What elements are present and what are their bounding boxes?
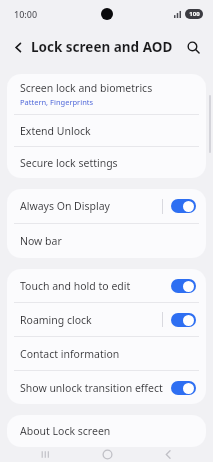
button[interactable]: Screen lock and biometrics <box>7 74 206 114</box>
staticText: Roaming clock <box>20 313 92 327</box>
staticText: Now bar <box>20 234 62 248</box>
button[interactable]: About Lock screen <box>7 415 206 447</box>
staticText: 10:00 <box>14 8 38 20</box>
button[interactable]: Extend Unlock <box>7 115 206 146</box>
button[interactable]: Show unlock transition effect toggle <box>171 381 196 395</box>
staticText: 100 <box>189 10 200 18</box>
button[interactable]: Search <box>181 35 205 59</box>
button[interactable]: Roaming clock toggle <box>171 313 196 327</box>
button[interactable]: Back <box>152 447 184 462</box>
staticText: Show unlock transition effect <box>20 381 163 395</box>
staticText: Extend Unlock <box>20 124 91 138</box>
button[interactable]: Secure lock settings <box>7 147 206 178</box>
staticText: Touch and hold to edit <box>20 279 131 293</box>
button[interactable]: Contact information <box>7 337 206 370</box>
staticText: Always On Display <box>20 199 110 213</box>
button[interactable]: Touch and hold to edit <box>7 269 206 302</box>
button[interactable]: Always On Display <box>7 189 206 223</box>
staticText: Contact information <box>20 347 120 361</box>
button[interactable]: Recents <box>29 447 61 462</box>
staticText: About Lock screen <box>20 424 111 438</box>
staticText: Screen lock and biometrics <box>20 81 153 95</box>
button[interactable]: Home <box>91 447 123 462</box>
button[interactable]: Show unlock transition effect <box>7 371 206 404</box>
staticText: Secure lock settings <box>20 156 118 170</box>
button[interactable]: Roaming clock <box>7 303 206 336</box>
button[interactable]: Now bar <box>7 224 206 258</box>
staticText: Pattern, Fingerprints <box>20 97 94 107</box>
staticText: Lock screen and AOD <box>31 38 173 56</box>
button[interactable]: Back <box>7 36 29 58</box>
button[interactable]: Always On Display toggle <box>171 199 196 213</box>
button[interactable]: Touch and hold to edit toggle <box>171 279 196 293</box>
